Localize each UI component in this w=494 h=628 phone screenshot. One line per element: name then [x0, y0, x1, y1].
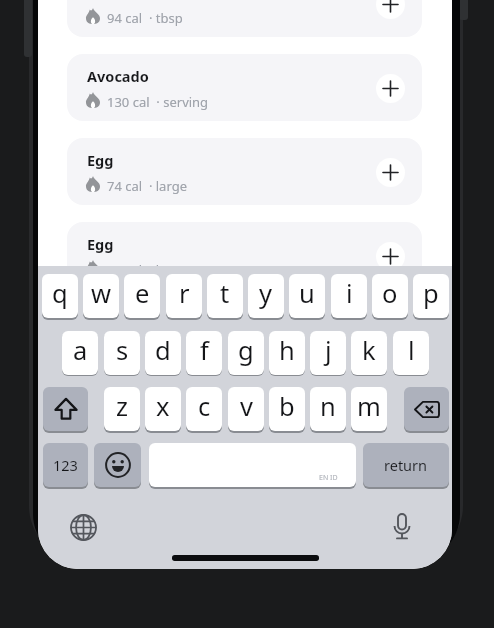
staticText: 74 cal · large	[107, 177, 187, 195]
button[interactable]: Egg	[67, 138, 422, 205]
button[interactable]	[69, 513, 97, 541]
button[interactable]: v	[228, 387, 264, 431]
staticText: return	[384, 455, 428, 475]
button[interactable]: j	[310, 331, 346, 375]
staticText: 130 cal · serving	[107, 93, 209, 111]
staticText: w	[91, 276, 112, 311]
staticText: 94 cal · tbsp	[107, 9, 183, 27]
staticText: n	[320, 389, 336, 424]
button[interactable]	[376, 0, 405, 19]
button[interactable]: z	[104, 387, 140, 431]
staticText: Egg	[87, 150, 114, 170]
button[interactable]: EN ID	[149, 443, 356, 487]
staticText: m	[357, 389, 381, 424]
staticText: h	[279, 333, 295, 368]
button[interactable]: u	[289, 274, 325, 318]
staticText: f	[200, 333, 209, 368]
button[interactable]: s	[104, 331, 140, 375]
button[interactable]: 123	[43, 443, 88, 487]
button[interactable]: a	[62, 331, 98, 375]
staticText: j	[325, 333, 332, 368]
staticText: d	[155, 333, 171, 368]
button[interactable]: w	[83, 274, 119, 318]
button[interactable]	[388, 511, 416, 543]
staticText: y	[259, 276, 273, 311]
button[interactable]	[376, 158, 405, 187]
staticText: a	[73, 333, 88, 368]
staticText: k	[362, 333, 376, 368]
staticText: z	[116, 389, 128, 424]
staticText: g	[238, 333, 254, 368]
staticText: EN ID	[319, 473, 338, 483]
button[interactable]: Avocado	[67, 54, 422, 121]
button[interactable]	[376, 242, 405, 271]
staticText: Egg	[87, 234, 114, 254]
button[interactable]: l	[393, 331, 429, 375]
button[interactable]: 94 cal · tbsp	[67, 0, 422, 37]
button[interactable]: e	[124, 274, 160, 318]
staticText: 123	[53, 455, 78, 475]
staticText: o	[382, 276, 398, 311]
button[interactable]: c	[186, 387, 222, 431]
staticText: b	[279, 389, 295, 424]
staticText: i	[346, 276, 353, 311]
staticText: v	[240, 389, 253, 424]
button[interactable]	[43, 387, 88, 431]
staticText: s	[116, 333, 129, 368]
button[interactable]: b	[269, 387, 305, 431]
button[interactable]: g	[228, 331, 264, 375]
staticText: c	[198, 389, 211, 424]
button[interactable]: Egg	[67, 222, 422, 289]
button[interactable]	[376, 74, 405, 103]
staticText: l	[408, 333, 415, 368]
button[interactable]: m	[351, 387, 387, 431]
button[interactable]: x	[145, 387, 181, 431]
button[interactable]: o	[372, 274, 408, 318]
button[interactable]: f	[186, 331, 222, 375]
staticText: Avocado	[87, 66, 149, 86]
button[interactable]: i	[331, 274, 367, 318]
button[interactable]: d	[145, 331, 181, 375]
button[interactable]	[94, 443, 141, 487]
button[interactable]	[404, 387, 449, 431]
button[interactable]: t	[207, 274, 243, 318]
staticText: u	[299, 276, 315, 311]
staticText: q	[52, 276, 68, 311]
staticText: p	[423, 276, 439, 311]
button[interactable]: q	[42, 274, 78, 318]
button[interactable]: n	[310, 387, 346, 431]
button[interactable]: h	[269, 331, 305, 375]
staticText: r	[179, 276, 190, 311]
button[interactable]: y	[248, 274, 284, 318]
button[interactable]: k	[351, 331, 387, 375]
staticText: t	[220, 276, 230, 311]
staticText: x	[156, 389, 170, 424]
button[interactable]: p	[413, 274, 449, 318]
staticText: 74 cal · large	[107, 261, 187, 279]
button[interactable]: return	[363, 443, 449, 487]
button[interactable]: r	[166, 274, 202, 318]
staticText: e	[135, 276, 150, 311]
